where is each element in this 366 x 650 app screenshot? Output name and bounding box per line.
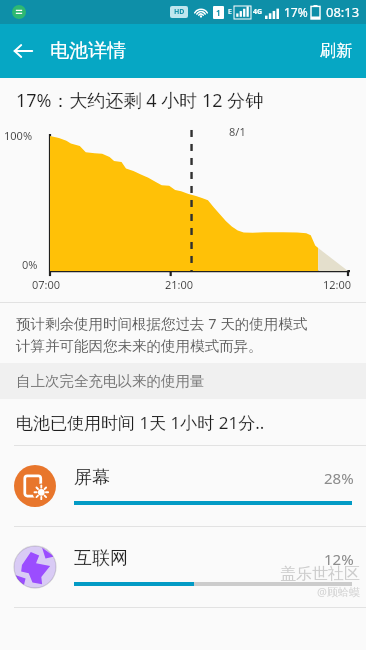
staticText: 电池已使用时间 1天 1小时 21分.. bbox=[16, 411, 265, 434]
staticText: HD bbox=[174, 7, 185, 17]
button[interactable]: 互联网 bbox=[0, 527, 366, 607]
staticText: 21:00 bbox=[165, 277, 194, 292]
staticText: 预计剩余使用时间根据您过去 7 天的使用模式 计算并可能因您未来的使用模式而异。 bbox=[16, 313, 308, 355]
staticText: 1 bbox=[216, 7, 221, 18]
staticText: 12% bbox=[324, 549, 354, 569]
staticText: 07:00 bbox=[32, 277, 61, 292]
staticText: @顾蛤蟆 bbox=[317, 584, 360, 599]
staticText: 28% bbox=[324, 468, 354, 488]
staticText: 12:00 bbox=[323, 277, 352, 292]
staticText: E bbox=[228, 7, 232, 17]
staticText: 8/1 bbox=[229, 124, 246, 139]
staticText: 刷新 bbox=[320, 41, 352, 61]
button[interactable]: 刷新 bbox=[306, 24, 366, 78]
staticText: 17%：大约还剩 4 小时 12 分钟 bbox=[16, 88, 264, 113]
staticText: 互联网 bbox=[74, 547, 128, 570]
button[interactable]: 屏幕 bbox=[0, 446, 366, 526]
staticText: 屏幕 bbox=[74, 466, 110, 489]
staticText: 08:13 bbox=[326, 3, 360, 21]
staticText: 4G bbox=[253, 7, 263, 17]
staticText: 电池详情 bbox=[50, 39, 126, 63]
button[interactable]: 电池已使用时间 1天 1小时 21分.. bbox=[0, 399, 366, 445]
staticText: 0% bbox=[22, 257, 38, 272]
staticText: 17% bbox=[284, 4, 308, 20]
staticText: 盖乐世社区 bbox=[280, 564, 360, 584]
staticText: 100% bbox=[4, 128, 33, 143]
button[interactable]: Back bbox=[0, 24, 46, 78]
staticText: 自上次完全充电以来的使用量 bbox=[16, 372, 205, 390]
